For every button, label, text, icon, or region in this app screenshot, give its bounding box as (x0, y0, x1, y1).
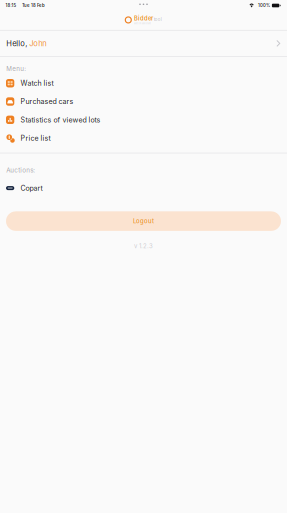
button[interactable]: Purchased cars (0, 92, 287, 111)
staticText: Watch list (20, 79, 53, 87)
button[interactable]: Price list (0, 129, 287, 147)
staticText: 18:15 (6, 3, 17, 8)
staticText: tool (154, 17, 162, 22)
button[interactable]: Logout (6, 211, 281, 231)
staticText: Logout (133, 218, 154, 225)
staticText: Purchased cars (20, 97, 73, 106)
staticText: Copart (20, 184, 42, 192)
button[interactable]: Hello, (0, 31, 287, 56)
button[interactable]: Copart (0, 179, 287, 197)
staticText: Menu: (6, 65, 26, 72)
staticText: Price list (20, 134, 50, 142)
staticText: Tue 18 Feb (22, 3, 45, 8)
staticText: John (29, 39, 46, 48)
staticText: Auctions: (6, 166, 35, 174)
button[interactable]: Watch list (0, 74, 287, 92)
staticText: Hello, (6, 39, 29, 48)
staticText: v 1.2.3 (134, 242, 153, 250)
staticText: Statistics of viewed lots (20, 116, 100, 124)
staticText: 100% (258, 3, 270, 8)
staticText: Bidder (134, 15, 153, 22)
staticText: auction assistant (134, 22, 151, 25)
button[interactable]: Statistics of viewed lots (0, 111, 287, 129)
